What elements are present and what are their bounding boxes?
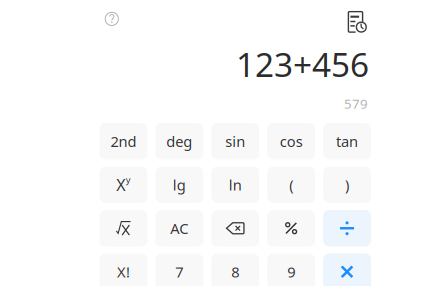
button[interactable]: Calculation history [348, 11, 368, 33]
staticText: 7 [175, 262, 183, 281]
button[interactable]: 8 [211, 253, 259, 286]
staticText: sin [225, 131, 245, 151]
staticText: deg [166, 131, 192, 151]
button[interactable]: tan [323, 123, 371, 159]
staticText: cos [280, 131, 303, 151]
staticText: y [126, 174, 131, 186]
button[interactable]: ln [211, 166, 259, 203]
button[interactable]: ) [323, 166, 371, 203]
button[interactable]: Help [104, 11, 120, 27]
staticText: tan [336, 131, 358, 151]
button[interactable]: 9 [267, 253, 315, 286]
staticText: X [116, 174, 125, 195]
button[interactable]: ( [267, 166, 315, 203]
staticText: 123+456 [236, 42, 369, 86]
button[interactable]: lg [155, 166, 203, 203]
button[interactable]: Divide [323, 210, 371, 246]
staticText: 579 [344, 95, 368, 112]
button[interactable]: Multiply [323, 253, 371, 286]
button[interactable]: deg [155, 123, 203, 159]
button[interactable]: X! [99, 253, 147, 286]
staticText: 2nd [110, 131, 136, 151]
button[interactable]: Delete [211, 210, 259, 246]
staticText: ) [345, 175, 349, 194]
button[interactable]: Percent [267, 210, 315, 246]
button[interactable]: Square root [99, 210, 147, 246]
staticText: lg [173, 175, 186, 194]
staticText: AC [170, 218, 188, 238]
button[interactable]: sin [211, 123, 259, 159]
staticText: ln [229, 175, 242, 194]
button[interactable]: 7 [155, 253, 203, 286]
button[interactable]: AC [155, 210, 203, 246]
button[interactable]: x to the power of y [99, 166, 147, 203]
button[interactable]: 2nd [99, 123, 147, 159]
staticText: 9 [287, 262, 295, 281]
staticText: ( [289, 175, 293, 194]
staticText: 8 [231, 262, 239, 281]
staticText: X! [117, 262, 130, 281]
button[interactable]: cos [267, 123, 315, 159]
